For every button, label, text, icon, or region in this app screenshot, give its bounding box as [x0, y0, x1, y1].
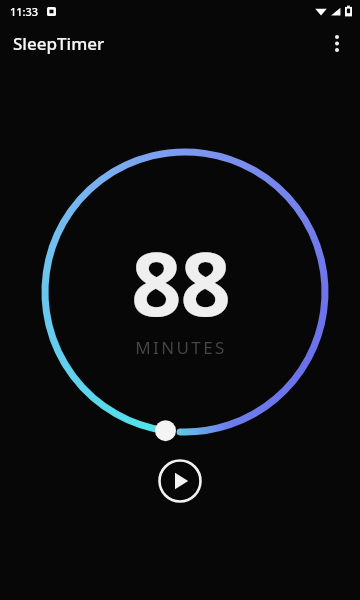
button[interactable]: Start timer [158, 459, 202, 503]
staticText: 11:33 [10, 4, 39, 19]
staticText: SleepTimer [13, 32, 105, 55]
staticText: MINUTES [135, 336, 227, 359]
staticText: 88 [131, 222, 230, 342]
button[interactable]: More options [314, 20, 360, 66]
